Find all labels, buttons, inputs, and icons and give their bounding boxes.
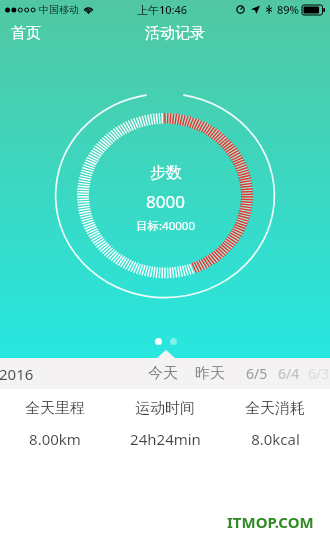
button[interactable]: 今天 — [148, 364, 178, 383]
staticText: 全天消耗 — [245, 399, 305, 418]
staticText: 8.0kcal — [251, 429, 300, 449]
staticText: 目标:40000 — [136, 218, 195, 234]
staticText: 6/5 — [246, 364, 268, 383]
button[interactable]: Page 2 — [170, 338, 177, 345]
button[interactable]: 首页 — [0, 18, 55, 48]
staticText: 首页 — [11, 24, 41, 42]
button[interactable]: 运动时间 — [110, 396, 220, 452]
staticText: 运动时间 — [135, 399, 195, 418]
button[interactable]: 6/5 — [246, 364, 268, 383]
staticText: 活动记录 — [145, 24, 205, 43]
button[interactable]: 6/3 — [308, 364, 330, 383]
staticText: ITMOP.COM — [227, 512, 314, 532]
button[interactable]: Page 1 — [155, 338, 162, 345]
staticText: 6/3 — [308, 364, 330, 383]
button[interactable]: 全天里程 — [0, 396, 110, 452]
staticText: 上午10:46 — [137, 2, 188, 17]
staticText: 8000 — [146, 190, 185, 213]
staticText: 8.00km — [29, 429, 81, 449]
staticText: 2016 — [0, 364, 34, 384]
staticText: 24h24min — [130, 429, 201, 449]
staticText: 89% — [277, 2, 299, 17]
button[interactable]: 6/4 — [278, 364, 300, 383]
staticText: 步数 — [150, 163, 182, 183]
staticText: 全天里程 — [25, 399, 85, 418]
button[interactable]: 昨天 — [195, 364, 225, 383]
staticText: 昨天 — [195, 364, 225, 383]
button[interactable]: 全天消耗 — [220, 396, 330, 452]
staticText: 今天 — [148, 364, 178, 383]
staticText: 6/4 — [278, 364, 300, 383]
staticText: 中国移动 — [39, 3, 79, 16]
